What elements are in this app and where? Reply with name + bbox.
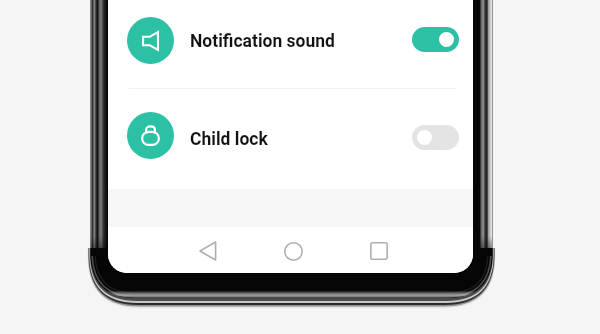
staticText: Child lock (190, 129, 268, 150)
button[interactable]: Home (275, 233, 311, 269)
staticText: Notification sound (190, 31, 335, 52)
button[interactable]: Child lock (108, 108, 473, 166)
button[interactable]: Switch off (412, 125, 459, 150)
button[interactable]: Back (190, 233, 226, 269)
button[interactable]: Notification sound (108, 10, 473, 68)
button[interactable]: Recent apps (361, 233, 397, 269)
button[interactable]: Switch on (412, 27, 459, 52)
